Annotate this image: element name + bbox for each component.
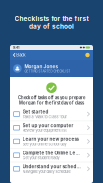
button[interactable]: Learn your new process: [10, 135, 93, 148]
button[interactable]: Set up your computer: [10, 121, 93, 135]
staticText: Morgan for the first day of class: [19, 100, 84, 105]
staticText: Take a 'Walk to Class' tour: [23, 114, 67, 119]
staticText: Complete the Online Learning Course: [23, 150, 81, 156]
button[interactable]: Back: [13, 52, 25, 58]
staticText: Back: [16, 52, 25, 58]
staticText: GETTING STARTED CHECKLIST: [24, 70, 70, 73]
staticText: Navigate your daily schedule: [23, 169, 71, 174]
staticText: Learn your new process: [23, 136, 79, 142]
staticText: Check off tasks off as you prepare: [18, 95, 85, 100]
button[interactable]: Understand your schedule: [10, 162, 93, 175]
staticText: 9:41: [13, 45, 19, 50]
button[interactable]: Account: [85, 52, 90, 57]
staticText: Set up your computer: [23, 123, 74, 128]
staticText: Understand your schedule: [23, 164, 81, 169]
staticText: Review your equipment list: [23, 128, 67, 133]
staticText: Morgan Jones: [24, 64, 58, 69]
staticText: day of school: [29, 22, 74, 30]
button[interactable]: Complete the Online Learning Course: [10, 148, 93, 162]
staticText: Get your student ready: [23, 156, 60, 160]
staticText: Checklists for the first: [14, 15, 88, 22]
button[interactable]: Get started: [10, 107, 93, 121]
staticText: Get started: [23, 109, 49, 115]
staticText: See your online school day: [23, 142, 67, 146]
